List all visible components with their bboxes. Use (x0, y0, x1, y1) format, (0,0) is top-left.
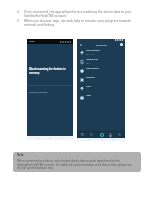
staticText: When you discover tags, use web help to … (24, 19, 141, 27)
staticText: 5. (17, 19, 20, 23)
staticText: SETTINGS (96, 43, 107, 46)
staticText: Note: (17, 153, 25, 157)
staticText: Settings (86, 76, 95, 79)
button[interactable]: Menu (79, 43, 83, 47)
button[interactable]: Search (88, 131, 95, 138)
button[interactable]: Live tracking (80, 48, 122, 57)
staticText: Once connected, the app will perform a m… (24, 10, 141, 18)
staticText: 10:07 (29, 40, 35, 43)
button[interactable]: Alert (80, 84, 122, 93)
staticText: Device info (86, 58, 98, 61)
button[interactable]: More (116, 131, 123, 138)
button[interactable]: Settings (80, 75, 122, 84)
button[interactable]: Profile (107, 131, 114, 138)
staticText: About scanning for devices in memory (29, 67, 71, 75)
staticText: Help (86, 94, 92, 97)
button[interactable]: Account (120, 43, 123, 46)
staticText: Live tracking (86, 49, 100, 52)
button[interactable]: Safe beacon (80, 66, 122, 75)
staticText: 4. (17, 10, 20, 14)
button[interactable]: Help (80, 93, 122, 102)
button[interactable]: Settings (98, 131, 105, 138)
button[interactable]: Home (79, 131, 86, 138)
staticText: When connected to a device, only tracked… (17, 159, 136, 169)
staticText: Scanning stopped (29, 91, 48, 94)
staticText: Alert (86, 85, 92, 88)
staticText: On - 5 m (86, 53, 94, 56)
staticText: Off (86, 62, 89, 65)
staticText: Safe beacon (86, 67, 100, 70)
button[interactable]: Device info (80, 57, 122, 66)
